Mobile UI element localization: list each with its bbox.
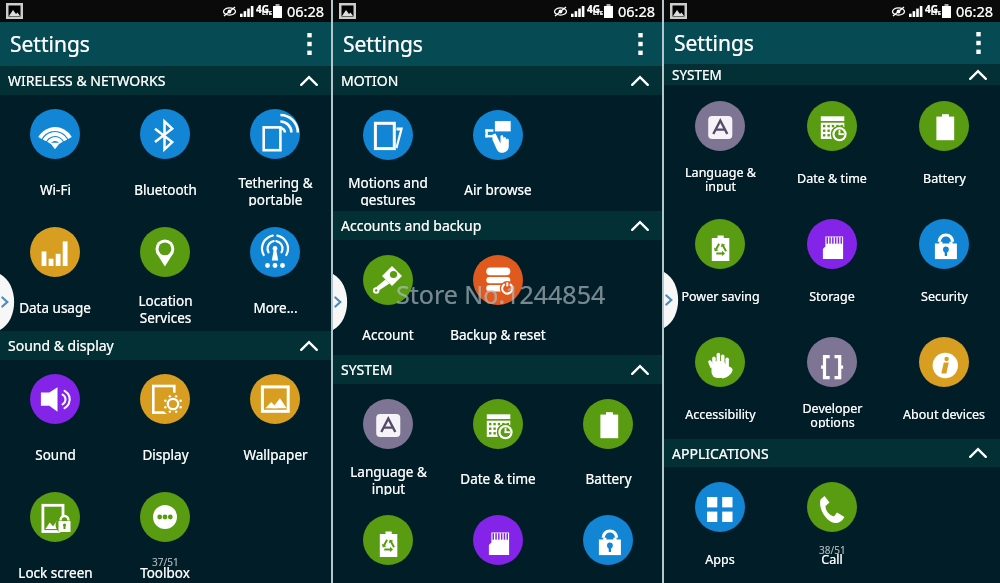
staticText: Accessibility [685, 406, 756, 423]
staticText: Accounts and backup [341, 216, 482, 235]
staticText: Wallpaper [243, 446, 308, 464]
button[interactable]: MOTION [333, 66, 662, 95]
button[interactable]: Tethering & portable [220, 95, 330, 213]
staticText: Wi-Fi [40, 181, 71, 199]
button[interactable]: Storage [443, 500, 553, 583]
button[interactable]: Display [110, 360, 220, 478]
button[interactable]: Next page [0, 274, 13, 330]
button[interactable]: SYSTEM [333, 355, 662, 384]
button[interactable]: 38/51 [776, 467, 888, 583]
staticText: Settings [343, 30, 423, 59]
staticText: Apps [705, 551, 735, 568]
button[interactable]: Air browse [443, 95, 553, 211]
button[interactable]: Security [553, 500, 662, 583]
staticText: LTE [931, 9, 942, 17]
staticText: Battery [923, 170, 966, 187]
staticText: Sound & display [8, 336, 114, 355]
staticText: 06:28 [618, 1, 656, 21]
staticText: MOTION [341, 71, 399, 90]
button[interactable]: SYSTEM [664, 64, 1000, 85]
staticText: Language & input [685, 164, 756, 192]
staticText: APPLICATIONS [672, 444, 769, 463]
button[interactable]: Battery [553, 384, 662, 500]
button[interactable]: Next page [333, 274, 346, 330]
staticText: More... [253, 299, 298, 317]
button[interactable]: Motions and gestures [333, 95, 443, 211]
staticText: Date & time [460, 470, 536, 488]
button[interactable]: Accessibility [664, 321, 776, 439]
button[interactable]: Sound [0, 360, 110, 478]
button[interactable]: Security [888, 203, 1000, 321]
staticText: 37/51 [152, 555, 179, 569]
button[interactable]: More options [964, 22, 1000, 64]
staticText: Security [921, 288, 968, 305]
staticText: Language & input [350, 463, 427, 495]
button[interactable]: WIRELESS & NETWORKS [0, 66, 331, 95]
staticText: Lock screen [18, 564, 93, 582]
button[interactable]: Bluetooth [110, 95, 220, 213]
staticText: Battery [585, 470, 632, 488]
staticText: SYSTEM [672, 66, 722, 84]
button[interactable]: Accounts and backup [333, 211, 662, 240]
staticText: Power saving [681, 288, 760, 305]
staticText: Air browse [464, 181, 532, 199]
staticText: WIRELESS & NETWORKS [8, 71, 166, 90]
staticText: 4G [925, 2, 938, 16]
staticText: Motions and gestures [348, 174, 428, 206]
staticText: Date & time [797, 170, 867, 187]
button[interactable]: Battery [888, 85, 1000, 203]
staticText: Store No.1244854 [396, 277, 606, 311]
staticText: Sound [35, 446, 76, 464]
button[interactable]: Power saving [664, 203, 776, 321]
staticText: Tethering & portable [238, 174, 313, 206]
button[interactable]: Apps [664, 467, 776, 583]
button[interactable]: 37/51 [110, 478, 220, 583]
staticText: SYSTEM [341, 360, 393, 379]
staticText: 38/51 [819, 543, 846, 557]
staticText: Developer options [802, 400, 863, 428]
staticText: Storage [809, 288, 855, 305]
staticText: LTE [593, 9, 604, 17]
staticText: Data usage [19, 299, 91, 317]
button[interactable]: Power saving [333, 500, 443, 583]
staticText: LTE [262, 9, 273, 17]
button[interactable]: More options [626, 22, 662, 66]
staticText: 4G [256, 2, 269, 16]
staticText: Display [142, 446, 189, 464]
staticText: About devices [903, 406, 985, 423]
button[interactable]: Date & time [776, 85, 888, 203]
staticText: Backup & reset [450, 326, 546, 344]
button[interactable]: Next page [664, 272, 677, 328]
button[interactable]: APPLICATIONS [664, 439, 1000, 467]
button[interactable]: Lock screen [0, 478, 110, 583]
staticText: Account [362, 326, 414, 344]
button[interactable]: Sound & display [0, 331, 331, 360]
staticText: 4G [587, 2, 600, 16]
button[interactable]: About devices [888, 321, 1000, 439]
button[interactable]: More... [220, 213, 330, 331]
staticText: Call [821, 551, 843, 568]
button[interactable]: Account [333, 240, 443, 355]
button[interactable]: Language & input [333, 384, 443, 500]
button[interactable]: Data usage [0, 213, 110, 331]
staticText: 06:28 [956, 1, 994, 21]
staticText: Settings [674, 29, 754, 58]
button[interactable]: Wallpaper [220, 360, 330, 478]
button[interactable]: Location Services [110, 213, 220, 331]
button[interactable]: Backup & reset [443, 240, 553, 355]
staticText: Bluetooth [134, 181, 197, 199]
staticText: Location Services [138, 292, 193, 324]
button[interactable]: Language & input [664, 85, 776, 203]
staticText: 06:28 [287, 1, 325, 21]
button[interactable]: Storage [776, 203, 888, 321]
staticText: Settings [10, 30, 90, 59]
button[interactable]: Developer options [776, 321, 888, 439]
button[interactable]: Date & time [443, 384, 553, 500]
button[interactable]: More options [295, 22, 331, 66]
button[interactable]: Wi-Fi [0, 95, 110, 213]
staticText: Toolbox [140, 564, 190, 582]
